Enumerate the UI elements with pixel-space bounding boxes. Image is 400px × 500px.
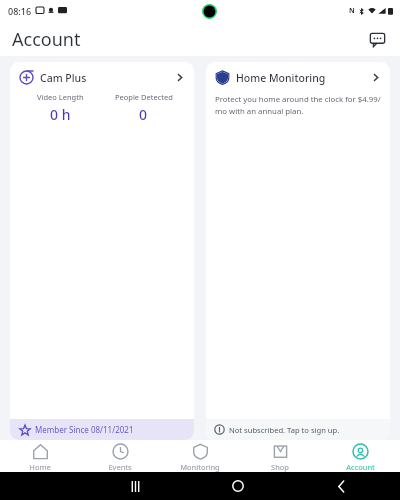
staticText: 0 h	[50, 105, 71, 124]
staticText: Member Since 08/11/2021	[35, 424, 134, 435]
button[interactable]: Cam Plus	[10, 62, 194, 440]
staticText: Account	[12, 27, 81, 52]
staticText: Home	[29, 462, 51, 472]
button[interactable]: Account	[320, 440, 400, 472]
button[interactable]: Events	[80, 440, 160, 472]
staticText: Cam Plus	[40, 71, 87, 85]
staticText: N	[349, 6, 355, 16]
staticText: People Detected	[115, 92, 173, 102]
button[interactable]: Messages	[364, 26, 390, 52]
staticText: Account	[346, 462, 375, 472]
staticText: Monitoring	[180, 462, 220, 472]
button[interactable]: Recents	[122, 473, 148, 499]
button[interactable]: Home	[0, 440, 80, 472]
staticText: Events	[108, 462, 132, 472]
staticText: Shop	[271, 462, 289, 472]
staticText: 0	[139, 105, 148, 124]
staticText: Home Monitoring	[236, 71, 326, 85]
button[interactable]: Back	[328, 473, 354, 499]
button[interactable]: Monitoring	[160, 440, 240, 472]
staticText: Protect you home around the clock for $4…	[215, 94, 381, 116]
button[interactable]: Home	[225, 473, 251, 499]
button[interactable]: Home Monitoring	[206, 62, 390, 440]
staticText: Not subscribed. Tap to sign up.	[229, 425, 340, 435]
staticText: 08:16	[8, 5, 32, 17]
button[interactable]: Shop	[240, 440, 320, 472]
staticText: Video Length	[37, 92, 84, 102]
